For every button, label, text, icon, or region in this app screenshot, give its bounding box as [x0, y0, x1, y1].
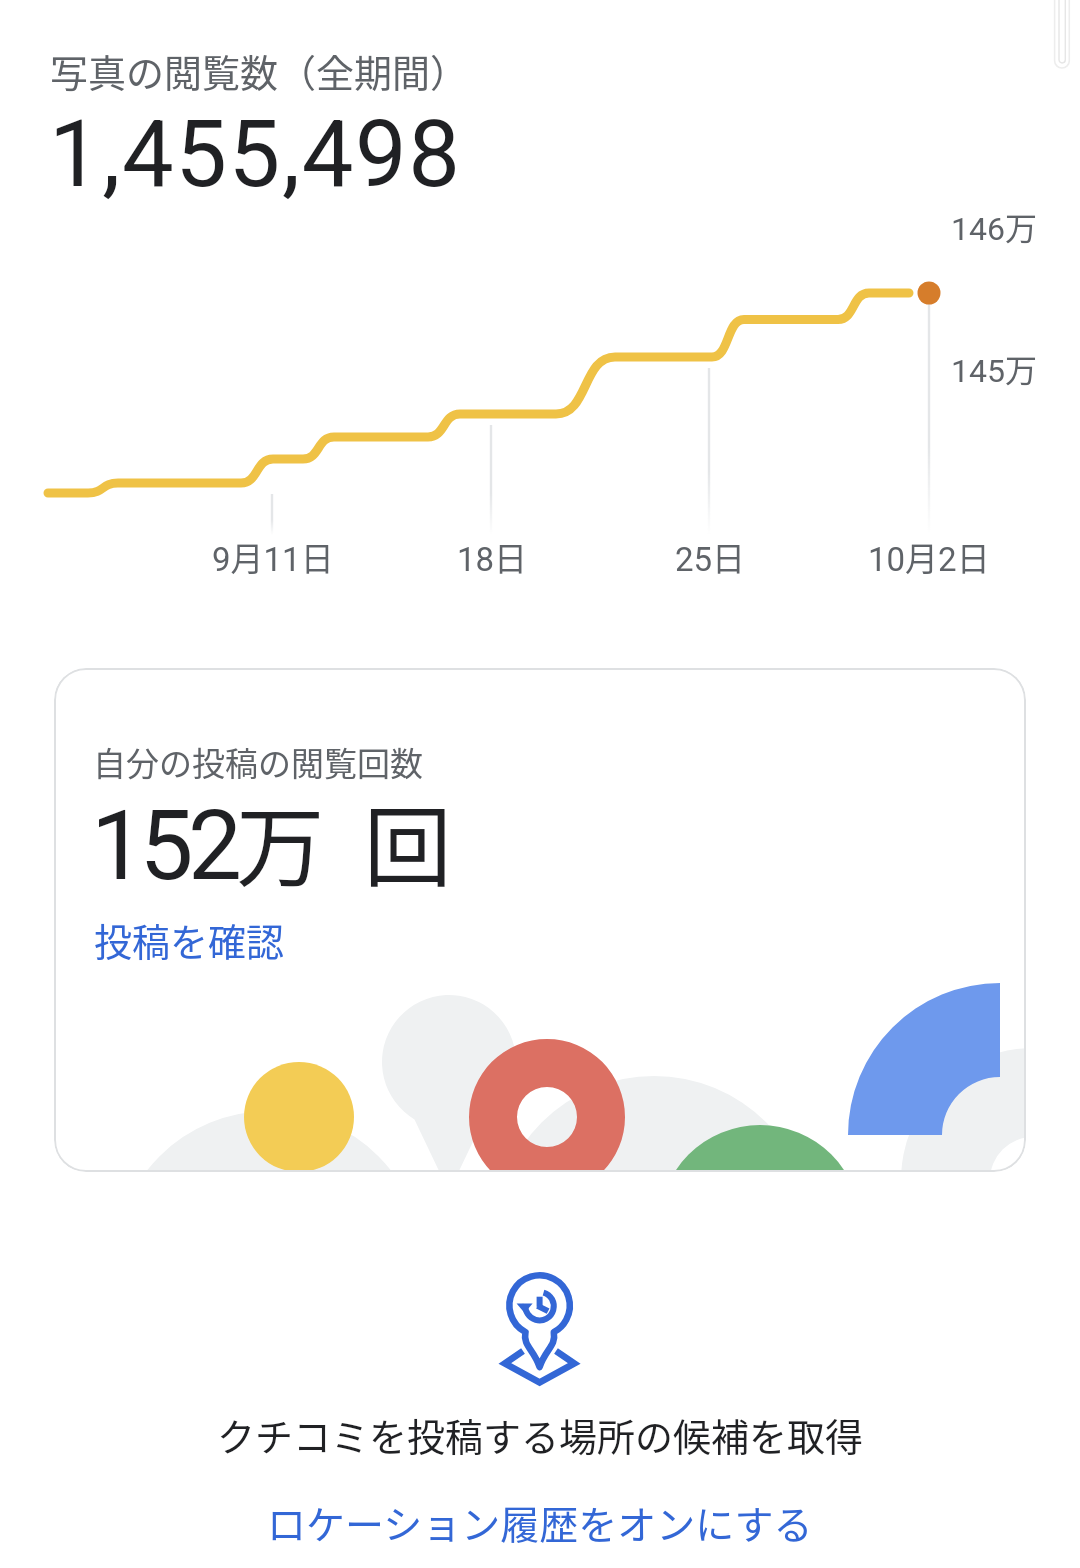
staticText: 146万 [951, 203, 1037, 249]
staticText: 9月11日 [212, 533, 334, 581]
staticText: 自分の投稿の閲覧回数 [93, 738, 423, 786]
staticText: 25日 [675, 533, 746, 581]
button[interactable]: ロケーション履歴をオンにする [251, 1486, 829, 1558]
staticText: クチコミを投稿する場所の候補を取得 [0, 1407, 1080, 1462]
staticText: 145万 [951, 345, 1037, 391]
staticText: 10月2日 [868, 533, 990, 581]
other: Location history [498, 1266, 582, 1388]
staticText: 1,455,498 [49, 101, 462, 209]
button[interactable]: 自分の投稿の閲覧回数 [54, 668, 1026, 1172]
staticText: 18日 [457, 533, 528, 581]
staticText: 152万 回 [91, 777, 452, 904]
button[interactable]: 投稿を確認 [80, 904, 299, 975]
staticText: 投稿を確認 [94, 912, 285, 967]
staticText: ロケーション履歴をオンにする [267, 1494, 813, 1550]
staticText: 写真の閲覧数（全期間） [50, 43, 469, 98]
